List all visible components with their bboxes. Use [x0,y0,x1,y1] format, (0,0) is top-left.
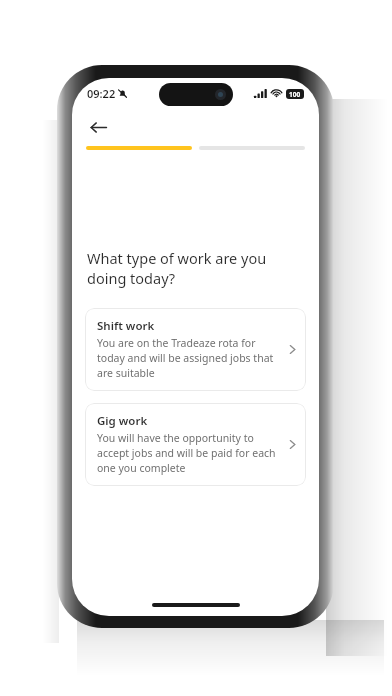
staticText: 100 [289,90,301,99]
staticText: Gig work [97,413,148,429]
button[interactable]: Gig work [85,403,306,486]
button[interactable]: Shift work [85,308,306,391]
staticText: 09:22 [87,86,116,101]
button[interactable]: Back [80,109,116,145]
staticText: You will have the opportunity to accept … [97,431,281,475]
staticText: You are on the Tradeaze rota for today a… [97,336,281,380]
staticText: Shift work [97,318,155,334]
staticText: What type of work are you doing today? [87,248,304,289]
